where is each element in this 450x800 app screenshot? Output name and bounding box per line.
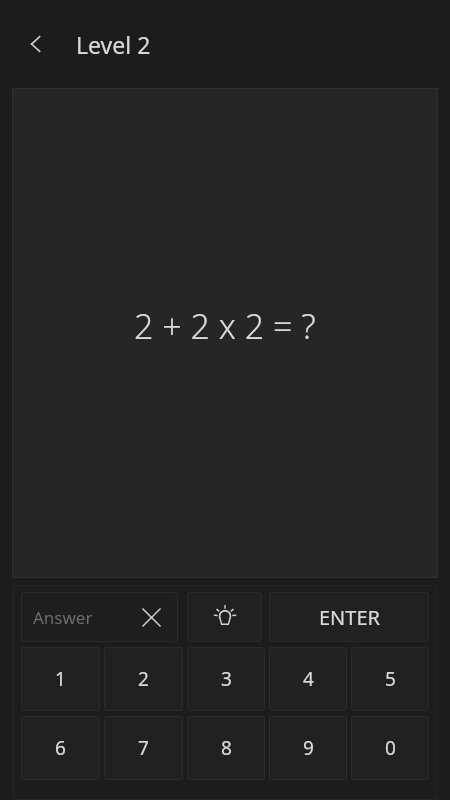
button[interactable]: Back — [12, 20, 60, 68]
staticText: 5 — [385, 666, 396, 692]
staticText: 8 — [221, 735, 232, 761]
button[interactable]: 3 — [187, 647, 265, 711]
staticText: 3 — [221, 666, 232, 692]
staticText: 7 — [138, 735, 149, 761]
button[interactable]: 5 — [351, 647, 429, 711]
button[interactable]: 9 — [269, 716, 347, 780]
staticText: 0 — [385, 735, 396, 761]
button[interactable]: 8 — [187, 716, 265, 780]
button[interactable]: 6 — [21, 716, 100, 780]
staticText: Answer — [33, 606, 136, 629]
staticText: 1 — [55, 666, 66, 692]
staticText: Level 2 — [76, 29, 151, 60]
staticText: 4 — [303, 666, 314, 692]
staticText: 6 — [55, 735, 66, 761]
staticText: ENTER — [319, 604, 380, 631]
button[interactable]: 2 — [104, 647, 183, 711]
button[interactable]: ENTER — [269, 592, 429, 642]
button[interactable]: Clear answer — [136, 602, 166, 632]
button[interactable]: 1 — [21, 647, 100, 711]
button[interactable]: 4 — [269, 647, 347, 711]
button[interactable]: Hint — [187, 592, 262, 642]
staticText: 2 + 2 x 2 = ? — [134, 303, 316, 349]
button[interactable]: 0 — [351, 716, 429, 780]
button[interactable]: 7 — [104, 716, 183, 780]
button[interactable]: Answer — [21, 592, 178, 642]
staticText: 9 — [303, 735, 314, 761]
staticText: 2 — [138, 666, 149, 692]
